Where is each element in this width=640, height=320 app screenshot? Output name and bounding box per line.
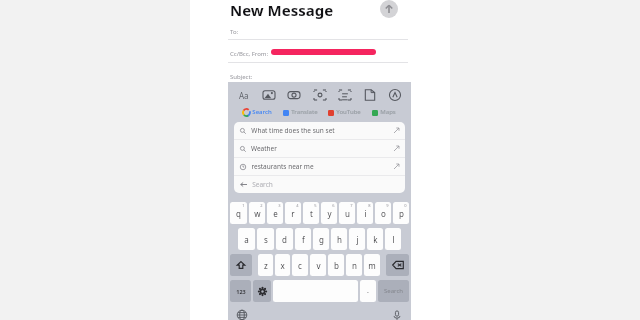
button[interactable]: restaurants near me: [234, 158, 405, 175]
staticText: 2: [260, 203, 263, 208]
button[interactable]: c: [292, 254, 308, 276]
staticText: w: [254, 208, 261, 219]
button[interactable]: Format text: [235, 86, 253, 104]
button[interactable]: t: [303, 202, 319, 224]
staticText: y: [327, 208, 332, 219]
staticText: 4: [296, 203, 299, 208]
staticText: Cc/Bcc, From:: [230, 50, 269, 58]
button[interactable]: Dictation: [391, 309, 403, 320]
staticText: l: [392, 234, 395, 245]
staticText: q: [236, 208, 241, 219]
button[interactable]: b: [328, 254, 344, 276]
button[interactable]: Settings: [253, 280, 271, 302]
button[interactable]: Photos: [260, 86, 278, 104]
staticText: Aa: [239, 90, 249, 101]
staticText: 7: [350, 203, 353, 208]
button[interactable]: j: [349, 228, 365, 250]
button[interactable]: What time does the sun set: [234, 122, 405, 139]
staticText: m: [368, 260, 376, 271]
button[interactable]: y: [321, 202, 337, 224]
staticText: Maps: [380, 108, 396, 116]
button[interactable]: Expand: [380, 0, 398, 18]
staticText: Search: [384, 287, 403, 295]
button[interactable]: Numbers: [230, 280, 251, 302]
button[interactable]: Change keyboard: [236, 309, 248, 320]
button[interactable]: a: [238, 228, 255, 250]
button[interactable]: l: [385, 228, 401, 250]
staticText: n: [352, 260, 357, 271]
button[interactable]: Weather: [234, 140, 405, 157]
button[interactable]: Scan: [311, 86, 329, 104]
staticText: What time does the sun set: [251, 126, 335, 135]
button[interactable]: d: [276, 228, 293, 250]
button[interactable]: Text scan: [336, 86, 354, 104]
button[interactable]: Document: [361, 86, 379, 104]
button[interactable]: Maps: [371, 108, 396, 116]
staticText: YouTube: [336, 108, 361, 116]
button[interactable]: e: [267, 202, 283, 224]
staticText: 8: [368, 203, 371, 208]
staticText: c: [298, 260, 302, 271]
staticText: Search: [252, 108, 272, 116]
staticText: z: [264, 260, 268, 271]
button[interactable]: o: [375, 202, 391, 224]
staticText: t: [310, 208, 313, 219]
staticText: v: [316, 260, 321, 271]
staticText: 6: [332, 203, 335, 208]
staticText: a: [244, 234, 249, 245]
button[interactable]: s: [257, 228, 274, 250]
staticText: o: [381, 208, 386, 219]
button[interactable]: m: [364, 254, 380, 276]
staticText: b: [334, 260, 339, 271]
button[interactable]: i: [357, 202, 373, 224]
button[interactable]: f: [295, 228, 311, 250]
staticText: Translate: [291, 108, 318, 116]
staticText: Search: [252, 180, 273, 189]
button[interactable]: Markup: [386, 86, 404, 104]
button[interactable]: k: [367, 228, 383, 250]
button[interactable]: q: [230, 202, 247, 224]
staticText: s: [264, 234, 268, 245]
staticText: 0: [404, 203, 407, 208]
staticText: restaurants near me: [251, 162, 314, 171]
button[interactable]: h: [331, 228, 347, 250]
button[interactable]: Search: [378, 280, 409, 302]
staticText: p: [399, 208, 404, 219]
button[interactable]: x: [275, 254, 290, 276]
staticText: i: [364, 208, 367, 219]
staticText: d: [282, 234, 287, 245]
staticText: To:: [230, 28, 239, 36]
button[interactable]: n: [346, 254, 362, 276]
staticText: u: [345, 208, 350, 219]
staticText: New Message: [230, 0, 334, 20]
staticText: .: [367, 286, 369, 296]
staticText: 123: [236, 288, 246, 295]
button[interactable]: YouTube: [327, 108, 361, 116]
staticText: r: [291, 208, 295, 219]
button[interactable]: v: [310, 254, 326, 276]
button[interactable]: p: [393, 202, 409, 224]
staticText: e: [273, 208, 278, 219]
staticText: 9: [386, 203, 389, 208]
staticText: 3: [278, 203, 281, 208]
button[interactable]: Search: [234, 176, 405, 193]
staticText: k: [373, 234, 378, 245]
button[interactable]: Translate: [282, 108, 318, 116]
staticText: Weather: [251, 144, 277, 153]
staticText: x: [280, 260, 285, 271]
button[interactable]: z: [258, 254, 273, 276]
button[interactable]: g: [313, 228, 329, 250]
button[interactable]: u: [339, 202, 355, 224]
button[interactable]: Camera: [285, 86, 303, 104]
button[interactable]: w: [249, 202, 265, 224]
staticText: Subject:: [230, 73, 253, 81]
button[interactable]: Shift: [230, 254, 252, 276]
button[interactable]: .: [360, 280, 376, 302]
staticText: 1: [242, 203, 245, 208]
button[interactable]: Search: [243, 108, 272, 116]
button[interactable]: r: [285, 202, 301, 224]
staticText: j: [356, 234, 359, 245]
button[interactable]: Backspace: [386, 254, 409, 276]
staticText: f: [302, 234, 305, 245]
